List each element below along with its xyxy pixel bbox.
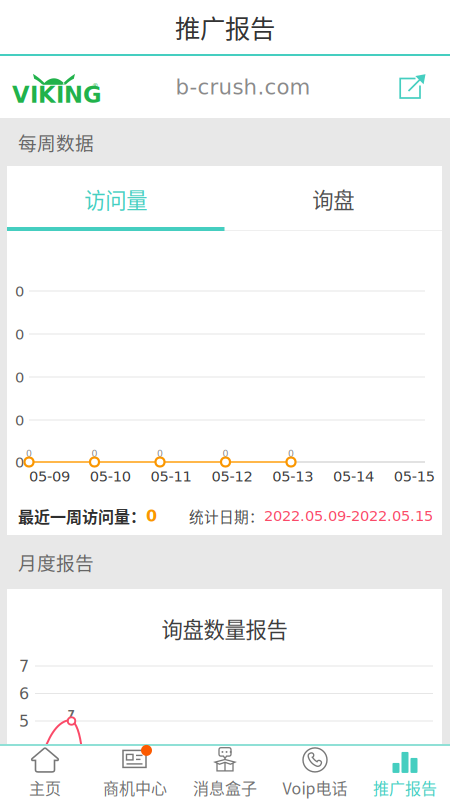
staticText: 05-15 xyxy=(394,468,435,485)
button[interactable]: Open website xyxy=(399,73,450,101)
staticText: 6 xyxy=(19,684,29,703)
staticText: 主页 xyxy=(29,776,61,799)
staticText: VIKING xyxy=(12,82,102,108)
staticText: 2022.05.09-2022.05.15 xyxy=(264,507,433,525)
staticText: 5 xyxy=(19,712,29,731)
staticText: 0 xyxy=(222,448,228,459)
staticText: 0 xyxy=(91,448,97,459)
staticText: b-crush.com xyxy=(175,75,310,99)
staticText: 7 xyxy=(67,708,74,720)
staticText: 05-09 xyxy=(29,468,70,485)
staticText: 0 xyxy=(15,454,24,471)
staticText: 0 xyxy=(157,448,163,459)
staticText: 商机中心 xyxy=(103,776,167,799)
staticText: 05-11 xyxy=(151,468,192,485)
staticText: 0 xyxy=(15,412,24,429)
staticText: 推广报告 xyxy=(373,776,437,799)
staticText: Voip电话 xyxy=(282,776,347,799)
staticText: 0 xyxy=(15,369,24,386)
staticText: 推广报告 xyxy=(175,9,275,45)
button[interactable]: Voip电话 xyxy=(270,745,360,800)
staticText: 0 xyxy=(146,507,157,525)
staticText: 05-14 xyxy=(333,468,374,485)
button[interactable]: 访问量 xyxy=(7,167,224,231)
staticText: 询盘 xyxy=(312,184,354,214)
staticText: 7 xyxy=(19,657,29,676)
button[interactable]: 商机中心 xyxy=(90,745,180,800)
staticText: 05-10 xyxy=(90,468,131,485)
button[interactable]: 主页 xyxy=(0,745,90,800)
staticText: 月度报告 xyxy=(18,548,94,575)
button[interactable]: 消息盒子 xyxy=(180,745,270,800)
staticText: 05-12 xyxy=(211,468,252,485)
staticText: ® xyxy=(92,82,99,90)
staticText: 统计日期： xyxy=(189,505,264,527)
button[interactable]: 询盘 xyxy=(224,167,442,231)
button[interactable]: 推广报告 xyxy=(360,745,450,800)
staticText: 消息盒子 xyxy=(193,776,257,799)
staticText: 0 xyxy=(26,448,32,459)
staticText: 询盘数量报告 xyxy=(161,613,287,644)
staticText: 最近一周访问量： xyxy=(18,504,146,528)
staticText: 0 xyxy=(15,326,24,343)
staticText: 0 xyxy=(288,448,294,459)
staticText: 0 xyxy=(15,283,24,300)
staticText: 每周数据 xyxy=(18,128,94,155)
staticText: 05-13 xyxy=(272,468,313,485)
staticText: 访问量 xyxy=(84,184,147,214)
